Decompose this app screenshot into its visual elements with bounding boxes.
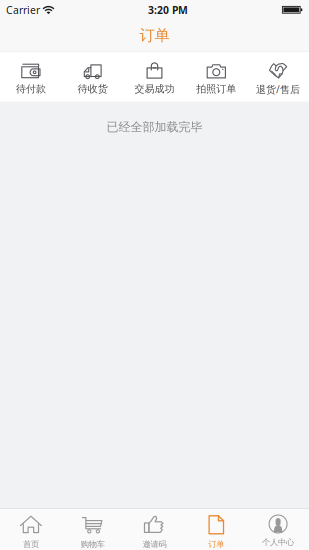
button[interactable]: 退货/售后: [247, 51, 309, 101]
staticText: 购物车: [81, 539, 105, 549]
button[interactable]: 订单: [185, 509, 247, 550]
staticText: 拍照订单: [196, 82, 236, 95]
staticText: 已经全部加载完毕: [106, 119, 202, 135]
staticText: 待收货: [78, 82, 108, 95]
staticText: 交易成功: [134, 82, 174, 95]
button[interactable]: 拍照订单: [185, 51, 247, 101]
button[interactable]: 待付款: [0, 51, 62, 101]
button[interactable]: 待收货: [62, 51, 124, 101]
button[interactable]: 首页: [0, 509, 62, 550]
button[interactable]: 个人中心: [247, 509, 309, 550]
staticText: 首页: [23, 539, 39, 549]
button[interactable]: 购物车: [62, 509, 124, 550]
staticText: 订单: [208, 539, 224, 549]
staticText: 退货/售后: [256, 82, 300, 96]
button[interactable]: 邀请码: [124, 509, 185, 550]
staticText: 个人中心: [262, 537, 294, 547]
staticText: Carrier: [6, 3, 40, 17]
staticText: 邀请码: [142, 539, 166, 549]
staticText: 订单: [139, 26, 169, 45]
staticText: 3:20 PM: [148, 3, 188, 17]
button[interactable]: 订单: [0, 20, 309, 51]
button[interactable]: 交易成功: [124, 51, 185, 101]
staticText: 待付款: [16, 82, 46, 95]
